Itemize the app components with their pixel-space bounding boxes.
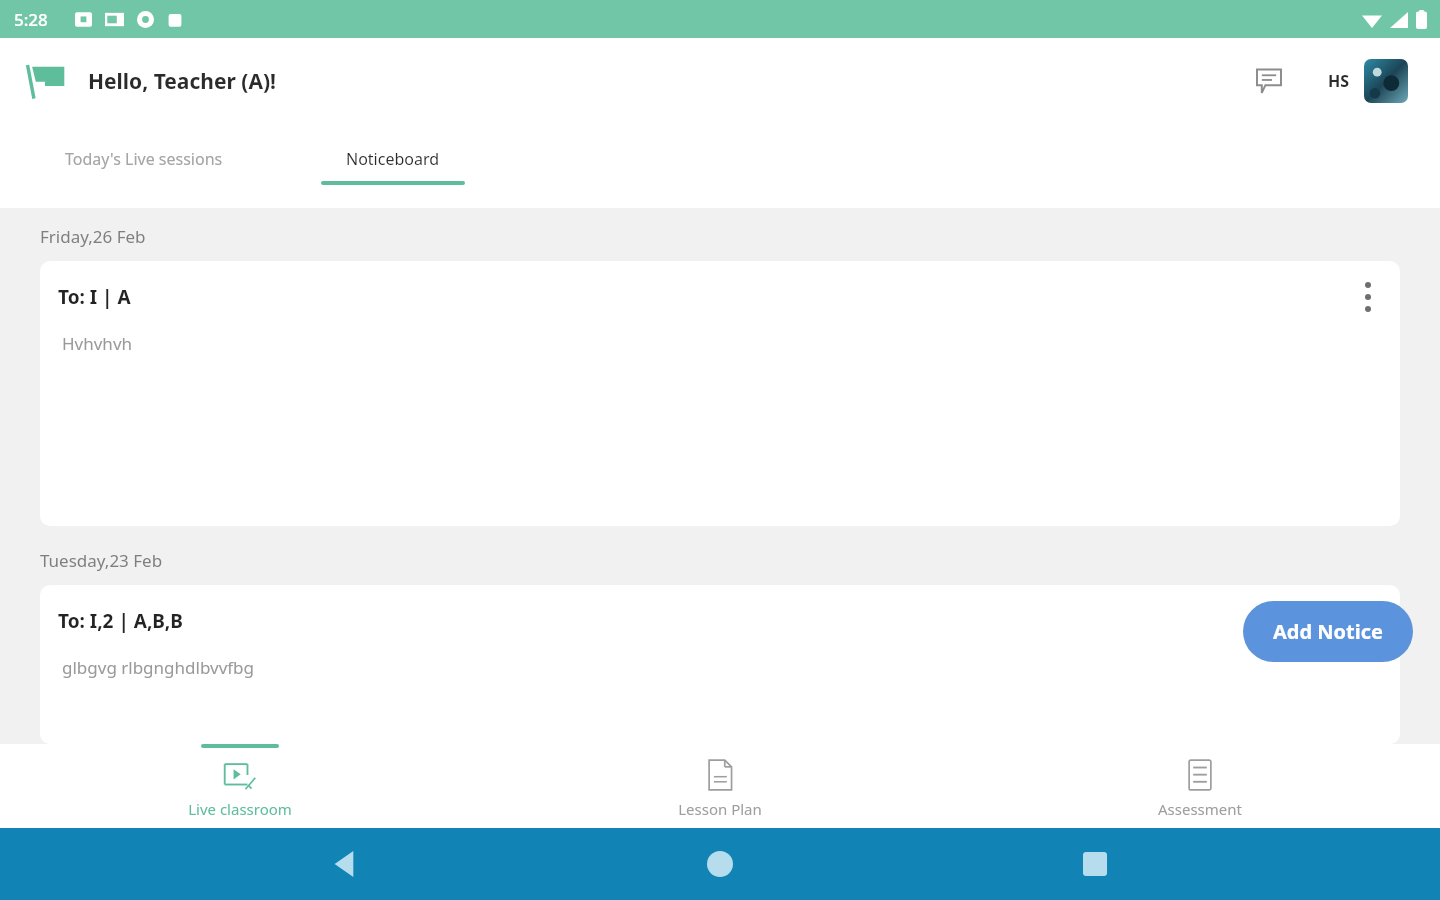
button[interactable]: Today's Live sessions — [0, 124, 288, 208]
button[interactable]: Live classroom — [0, 744, 480, 828]
button[interactable]: Recents — [1065, 834, 1125, 894]
staticText: 5:28 — [14, 8, 48, 31]
button[interactable]: Home — [690, 834, 750, 894]
staticText: Lesson Plan — [678, 799, 762, 819]
staticText: To: I | A — [58, 284, 131, 310]
staticText: Hello, Teacher (A)! — [88, 67, 277, 96]
staticText: Today's Live sessions — [65, 148, 223, 170]
button[interactable]: More options — [1344, 273, 1392, 321]
staticText: Tuesday,23 Feb — [40, 549, 163, 572]
staticText: Live classroom — [188, 799, 292, 819]
button[interactable]: Back — [315, 834, 375, 894]
button[interactable]: To: I,2 | A,B,B — [40, 585, 1400, 744]
staticText: Friday,26 Feb — [40, 225, 146, 248]
staticText: glbgvg rlbgnghdlbvvfbg — [62, 656, 255, 679]
button[interactable]: Add Notice — [1243, 601, 1413, 662]
button[interactable]: To: I | A — [40, 261, 1400, 526]
staticText: Noticeboard — [346, 148, 440, 170]
staticText: HS — [1328, 70, 1350, 92]
staticText: To: I,2 | A,B,B — [58, 608, 183, 634]
staticText: Assessment — [1158, 799, 1242, 819]
button[interactable]: HS — [1316, 54, 1420, 108]
button[interactable]: Assessment — [960, 744, 1440, 828]
staticText: Add Notice — [1273, 618, 1383, 645]
button[interactable]: Lesson Plan — [480, 744, 960, 828]
button[interactable]: Messages — [1246, 58, 1292, 104]
button[interactable]: Noticeboard — [288, 124, 498, 208]
staticText: Hvhvhvh — [62, 332, 133, 355]
